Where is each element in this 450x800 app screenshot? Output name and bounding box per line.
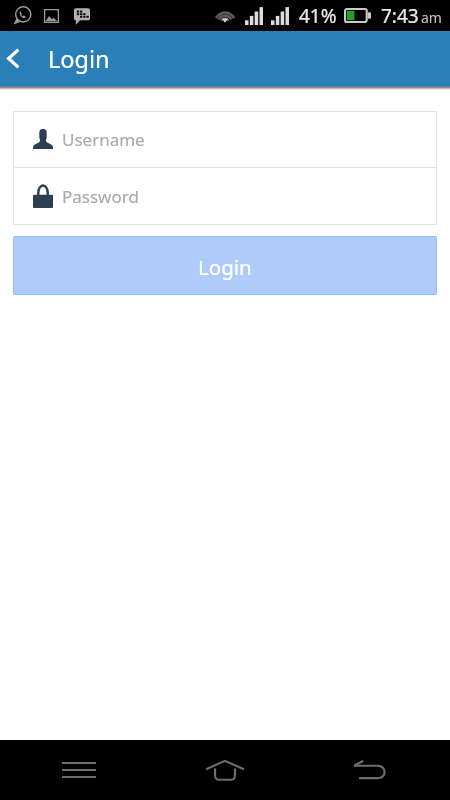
staticText: Username <box>62 128 145 151</box>
button[interactable]: Back <box>341 741 399 799</box>
button[interactable]: Home <box>196 741 254 799</box>
button[interactable]: Login <box>13 236 437 295</box>
staticText: Login <box>48 43 110 75</box>
staticText: 41% <box>299 3 337 29</box>
button[interactable]: Back <box>0 31 26 86</box>
staticText: Login <box>198 253 252 281</box>
staticText: am <box>421 8 442 27</box>
button[interactable]: Username <box>13 111 437 167</box>
button[interactable]: Password <box>13 168 437 225</box>
staticText: 7:43 <box>381 3 419 29</box>
staticText: Password <box>62 185 139 208</box>
button[interactable]: Recent apps <box>50 741 108 799</box>
